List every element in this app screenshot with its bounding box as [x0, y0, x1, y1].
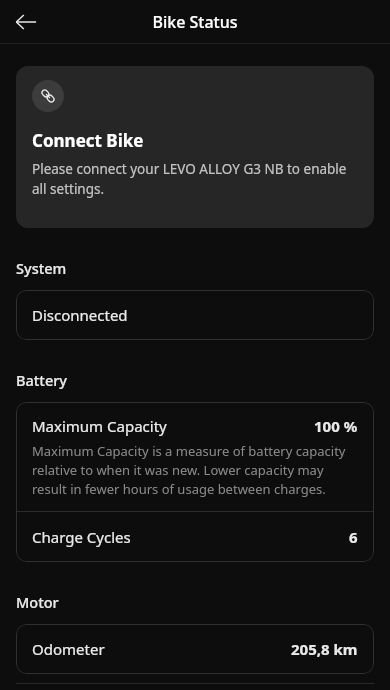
staticText: 100 %: [314, 416, 358, 436]
staticText: Maximum Capacity: [32, 416, 167, 436]
button[interactable]: Maximum Capacity: [16, 402, 374, 511]
staticText: Maximum Capacity is a measure of battery…: [32, 442, 358, 498]
staticText: System: [16, 258, 67, 278]
staticText: Motor: [16, 592, 59, 612]
staticText: Please connect your LEVO ALLOY G3 NB to …: [32, 160, 358, 198]
staticText: Battery: [16, 370, 67, 390]
staticText: Disconnected: [32, 305, 128, 325]
button[interactable]: Charge Cycles: [16, 512, 374, 562]
button[interactable]: Odometer: [16, 624, 374, 674]
button[interactable]: Disconnected: [16, 290, 374, 340]
staticText: Connect Bike: [32, 129, 144, 152]
button[interactable]: Connect Bike: [16, 66, 374, 228]
button[interactable]: Back: [6, 2, 46, 42]
staticText: 205,8 km: [291, 639, 358, 659]
staticText: 6: [349, 527, 358, 547]
staticText: Bike Status: [152, 11, 238, 33]
staticText: Odometer: [32, 639, 105, 659]
staticText: Charge Cycles: [32, 527, 131, 547]
